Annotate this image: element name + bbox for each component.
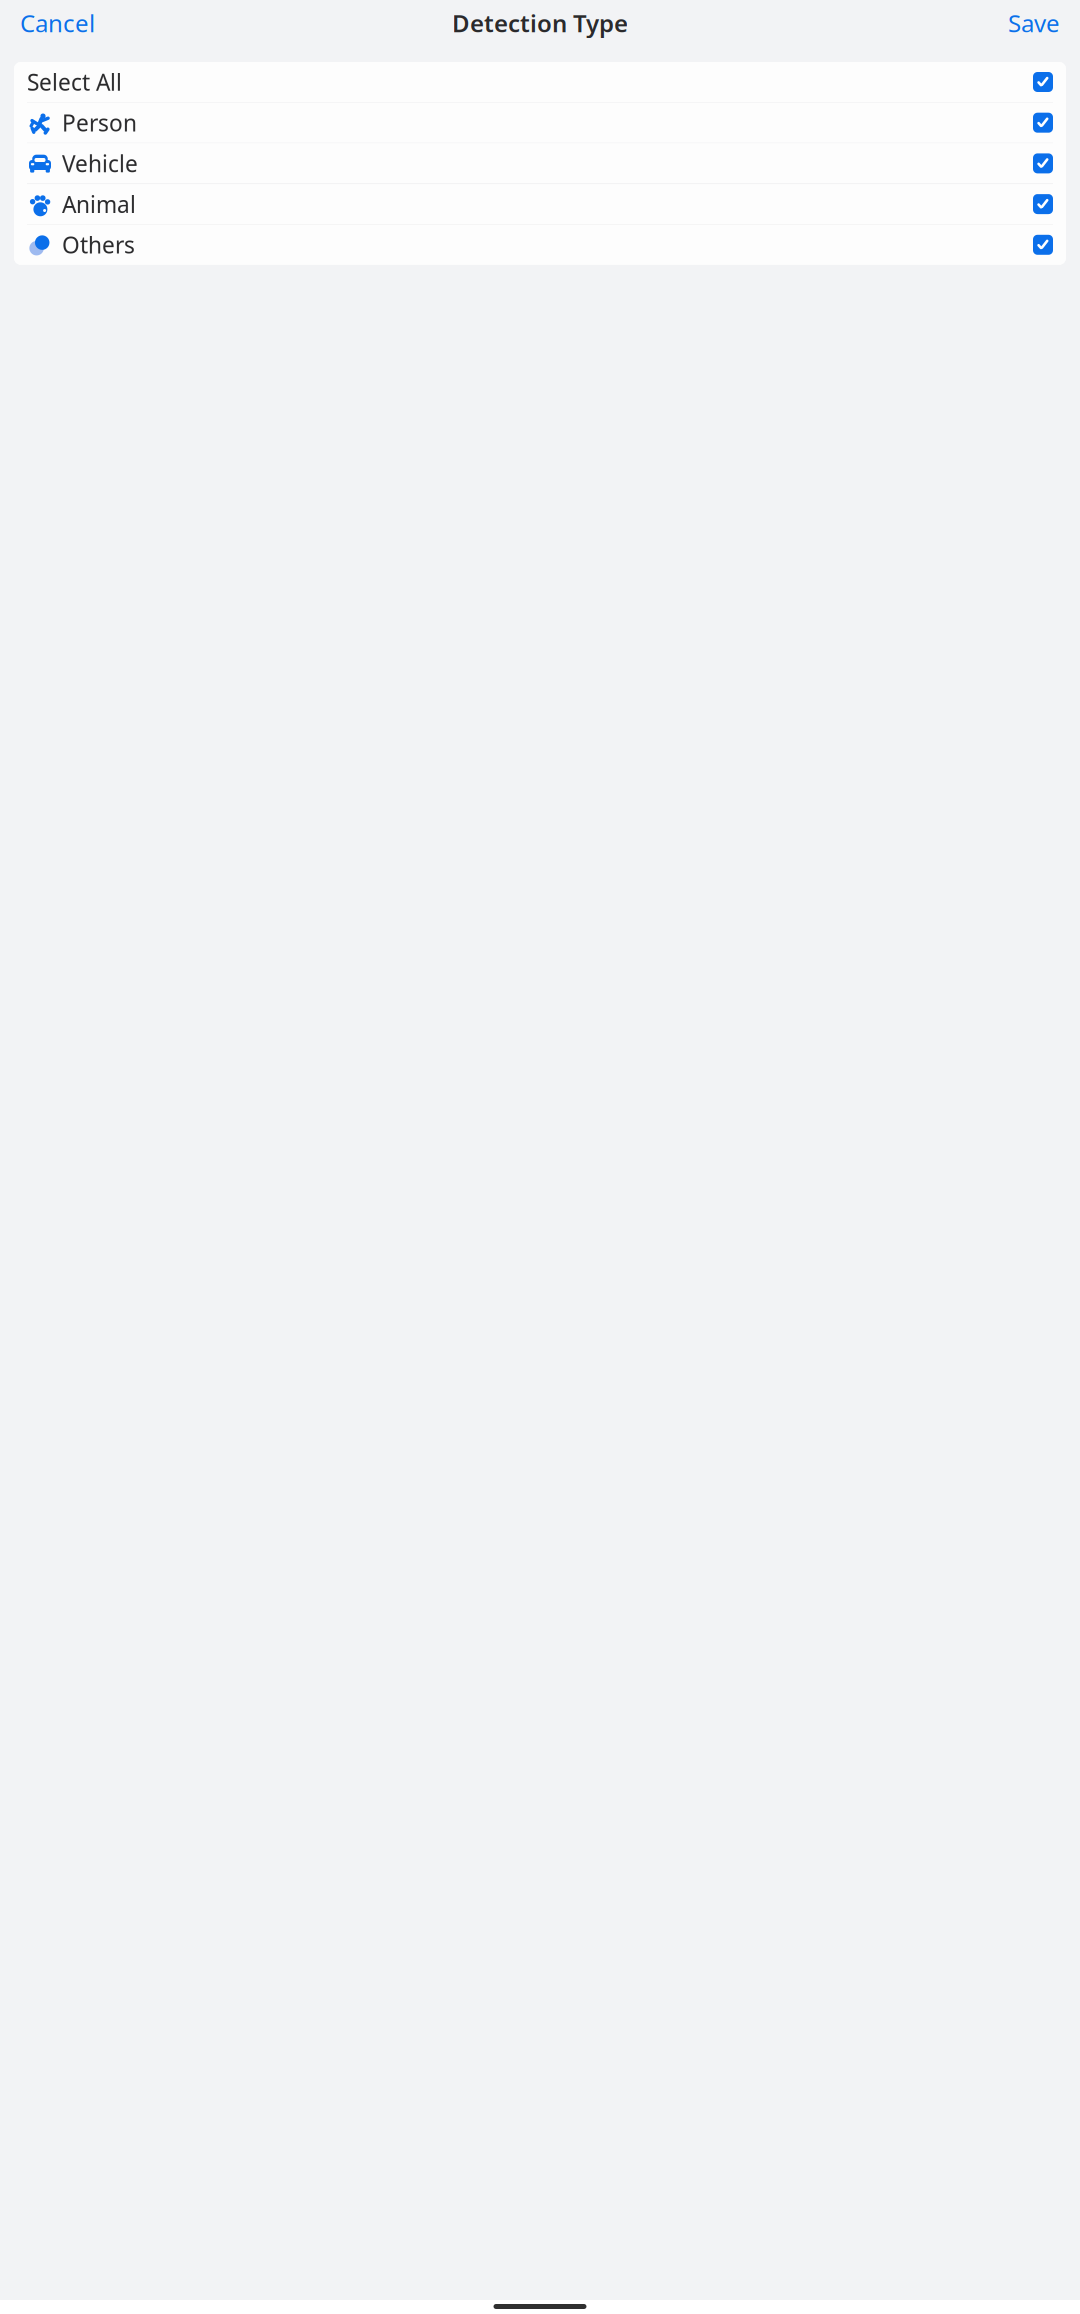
staticText: Vehicle: [62, 148, 138, 178]
button[interactable]: Others: [14, 225, 1066, 265]
staticText: Detection Type: [452, 7, 628, 39]
staticText: Cancel: [20, 7, 95, 39]
button[interactable]: Person: [14, 103, 1066, 143]
button[interactable]: Cancel: [10, 1, 105, 45]
staticText: Person: [62, 108, 137, 138]
staticText: Animal: [62, 189, 136, 219]
button[interactable]: Animal: [14, 184, 1066, 224]
button[interactable]: Select All: [14, 62, 1066, 102]
button[interactable]: Vehicle: [14, 143, 1066, 183]
staticText: Select All: [27, 67, 122, 97]
staticText: Save: [1008, 7, 1060, 39]
staticText: Others: [62, 230, 135, 260]
button[interactable]: Save: [998, 1, 1070, 45]
